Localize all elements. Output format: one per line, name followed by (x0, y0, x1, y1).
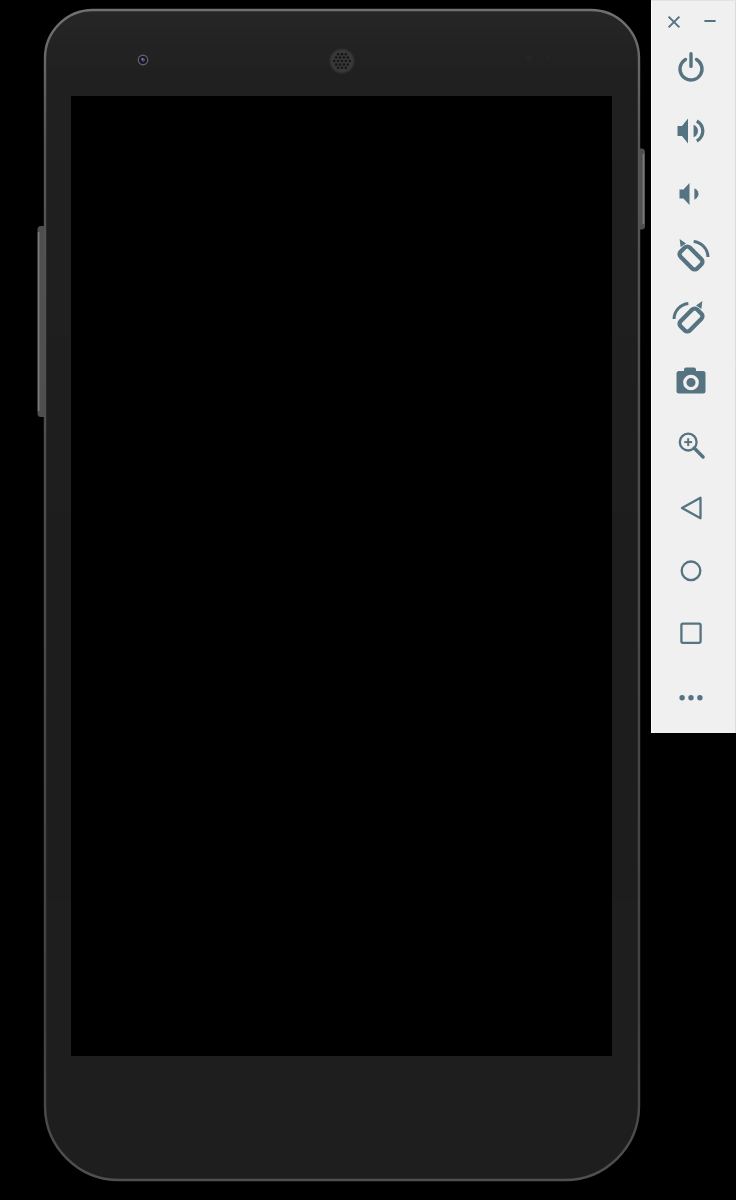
button[interactable] (671, 299, 711, 339)
button[interactable] (671, 613, 711, 653)
button[interactable] (671, 237, 711, 277)
button[interactable] (671, 487, 711, 527)
button[interactable] (671, 174, 711, 214)
button[interactable] (671, 425, 711, 465)
button[interactable] (697, 8, 723, 34)
button[interactable] (661, 9, 687, 35)
button[interactable] (671, 362, 711, 402)
button[interactable] (671, 49, 711, 89)
button[interactable] (671, 676, 711, 716)
button[interactable] (671, 111, 711, 151)
button[interactable] (671, 550, 711, 590)
